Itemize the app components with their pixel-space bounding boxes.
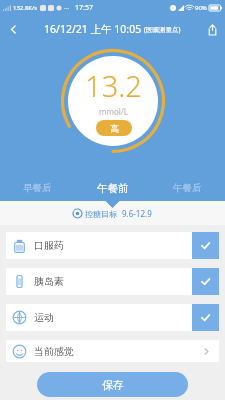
staticText: ··· xyxy=(64,4,69,12)
staticText: 90% xyxy=(195,4,207,12)
staticText: 当前感觉 xyxy=(34,345,74,358)
button[interactable]: Back xyxy=(0,16,26,42)
button[interactable]: 运动 xyxy=(6,304,219,331)
staticText: 17:57 xyxy=(75,3,93,13)
staticText: (医嘱测量点) xyxy=(144,25,181,34)
button[interactable]: Toggle 运动 xyxy=(192,304,219,331)
staticText: 午餐后 xyxy=(173,182,202,194)
staticText: 早餐后 xyxy=(23,182,52,194)
button[interactable]: Toggle 口服药 xyxy=(192,232,219,259)
staticText: 胰岛素 xyxy=(34,275,64,288)
staticText: 13.2 xyxy=(85,66,142,105)
button[interactable]: Toggle 胰岛素 xyxy=(192,268,219,295)
staticText: 保存 xyxy=(102,378,124,392)
staticText: 9.6-12.9 xyxy=(122,208,152,219)
staticText: 16/12/21 上午 10:05 xyxy=(44,22,142,36)
staticText: 口服药 xyxy=(34,239,64,252)
button[interactable]: 早餐后 xyxy=(0,175,75,201)
button[interactable]: 口服药 xyxy=(6,232,219,259)
staticText: 午餐前 xyxy=(97,182,129,195)
staticText: mmol/L xyxy=(99,106,129,117)
button[interactable]: 午餐前 xyxy=(75,175,150,201)
button[interactable]: 当前感觉 xyxy=(6,340,219,362)
button[interactable]: Share xyxy=(199,16,225,42)
button[interactable]: 胰岛素 xyxy=(6,268,219,295)
staticText: 控糖目标 xyxy=(85,209,117,219)
staticText: 高 xyxy=(110,123,119,134)
button[interactable]: 保存 xyxy=(37,372,188,397)
staticText: 运动 xyxy=(34,311,54,324)
staticText: 132.8K/s xyxy=(13,4,38,12)
button[interactable]: 午餐后 xyxy=(150,175,225,201)
